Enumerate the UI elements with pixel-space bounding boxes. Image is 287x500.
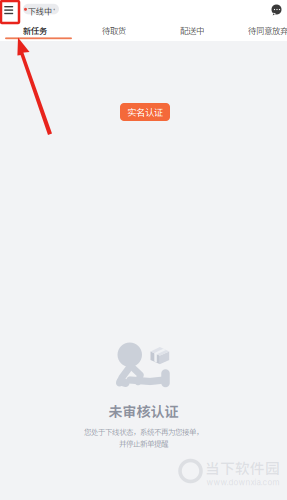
staticText: 实名认证 bbox=[127, 105, 163, 119]
button[interactable]: 配送中 bbox=[162, 20, 222, 41]
button[interactable]: 待同意放弃 bbox=[238, 20, 287, 41]
staticText: 当下软件园 bbox=[205, 457, 280, 478]
staticText: 您处于下线状态，系统不再为您接单， bbox=[84, 426, 203, 437]
staticText: 新任务 bbox=[23, 24, 47, 36]
staticText: 待取货 bbox=[102, 24, 126, 36]
staticText: 待同意放弃 bbox=[248, 24, 287, 36]
staticText: 下线中 bbox=[28, 5, 52, 17]
staticText: www.downxia.com bbox=[206, 477, 279, 487]
staticText: 未审核认证 bbox=[108, 401, 178, 421]
button[interactable]: 实名认证 bbox=[120, 103, 170, 121]
button[interactable]: 下线中 bbox=[23, 4, 59, 15]
button[interactable]: 菜单 bbox=[0, 0, 20, 20]
staticText: 并停止新单提醒 bbox=[119, 438, 168, 449]
button[interactable]: 新任务 bbox=[5, 20, 65, 41]
staticText: 配送中 bbox=[180, 24, 204, 36]
button[interactable]: 待取货 bbox=[84, 20, 144, 41]
button[interactable]: 消息 bbox=[268, 1, 286, 19]
